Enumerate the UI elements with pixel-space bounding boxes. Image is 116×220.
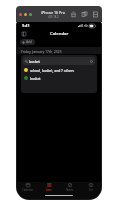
button[interactable]: Home bbox=[69, 10, 77, 18]
staticText: iPhone 16 Pro bbox=[41, 10, 66, 15]
button[interactable]: Minimize bbox=[24, 13, 27, 16]
staticText: school, basket, and 7 others bbox=[30, 68, 75, 72]
staticText: basket bbox=[30, 76, 41, 80]
button[interactable]: Screenshot bbox=[91, 10, 99, 18]
button[interactable]: Notes bbox=[59, 182, 80, 194]
staticText: basket bbox=[29, 59, 40, 64]
staticText: Add bbox=[26, 40, 33, 44]
staticText: Calendar bbox=[50, 31, 69, 37]
button[interactable]: Clear search bbox=[89, 59, 93, 63]
staticText: Notes bbox=[66, 188, 74, 192]
button[interactable]: Add bbox=[20, 39, 35, 45]
button[interactable]: Lists bbox=[38, 182, 59, 194]
button[interactable]: Close bbox=[19, 13, 22, 16]
button[interactable]: Calendar bbox=[17, 182, 38, 194]
staticText: Set bbox=[89, 188, 93, 192]
button[interactable]: App Switcher bbox=[80, 10, 88, 18]
staticText: Friday, January 17th, 2025 bbox=[21, 49, 62, 53]
staticText: iOS 18.2 bbox=[48, 15, 59, 19]
button[interactable]: basket bbox=[23, 74, 95, 82]
staticText: Calendar bbox=[22, 188, 34, 192]
button[interactable]: Sidebar bbox=[20, 30, 27, 37]
staticText: Lists bbox=[46, 188, 52, 192]
button[interactable]: Set bbox=[80, 182, 101, 194]
button[interactable]: Maximize bbox=[29, 13, 32, 16]
button[interactable]: school, basket, and 7 others bbox=[23, 66, 95, 74]
staticText: 9:41 bbox=[22, 23, 30, 28]
button[interactable]: basket bbox=[23, 57, 95, 65]
